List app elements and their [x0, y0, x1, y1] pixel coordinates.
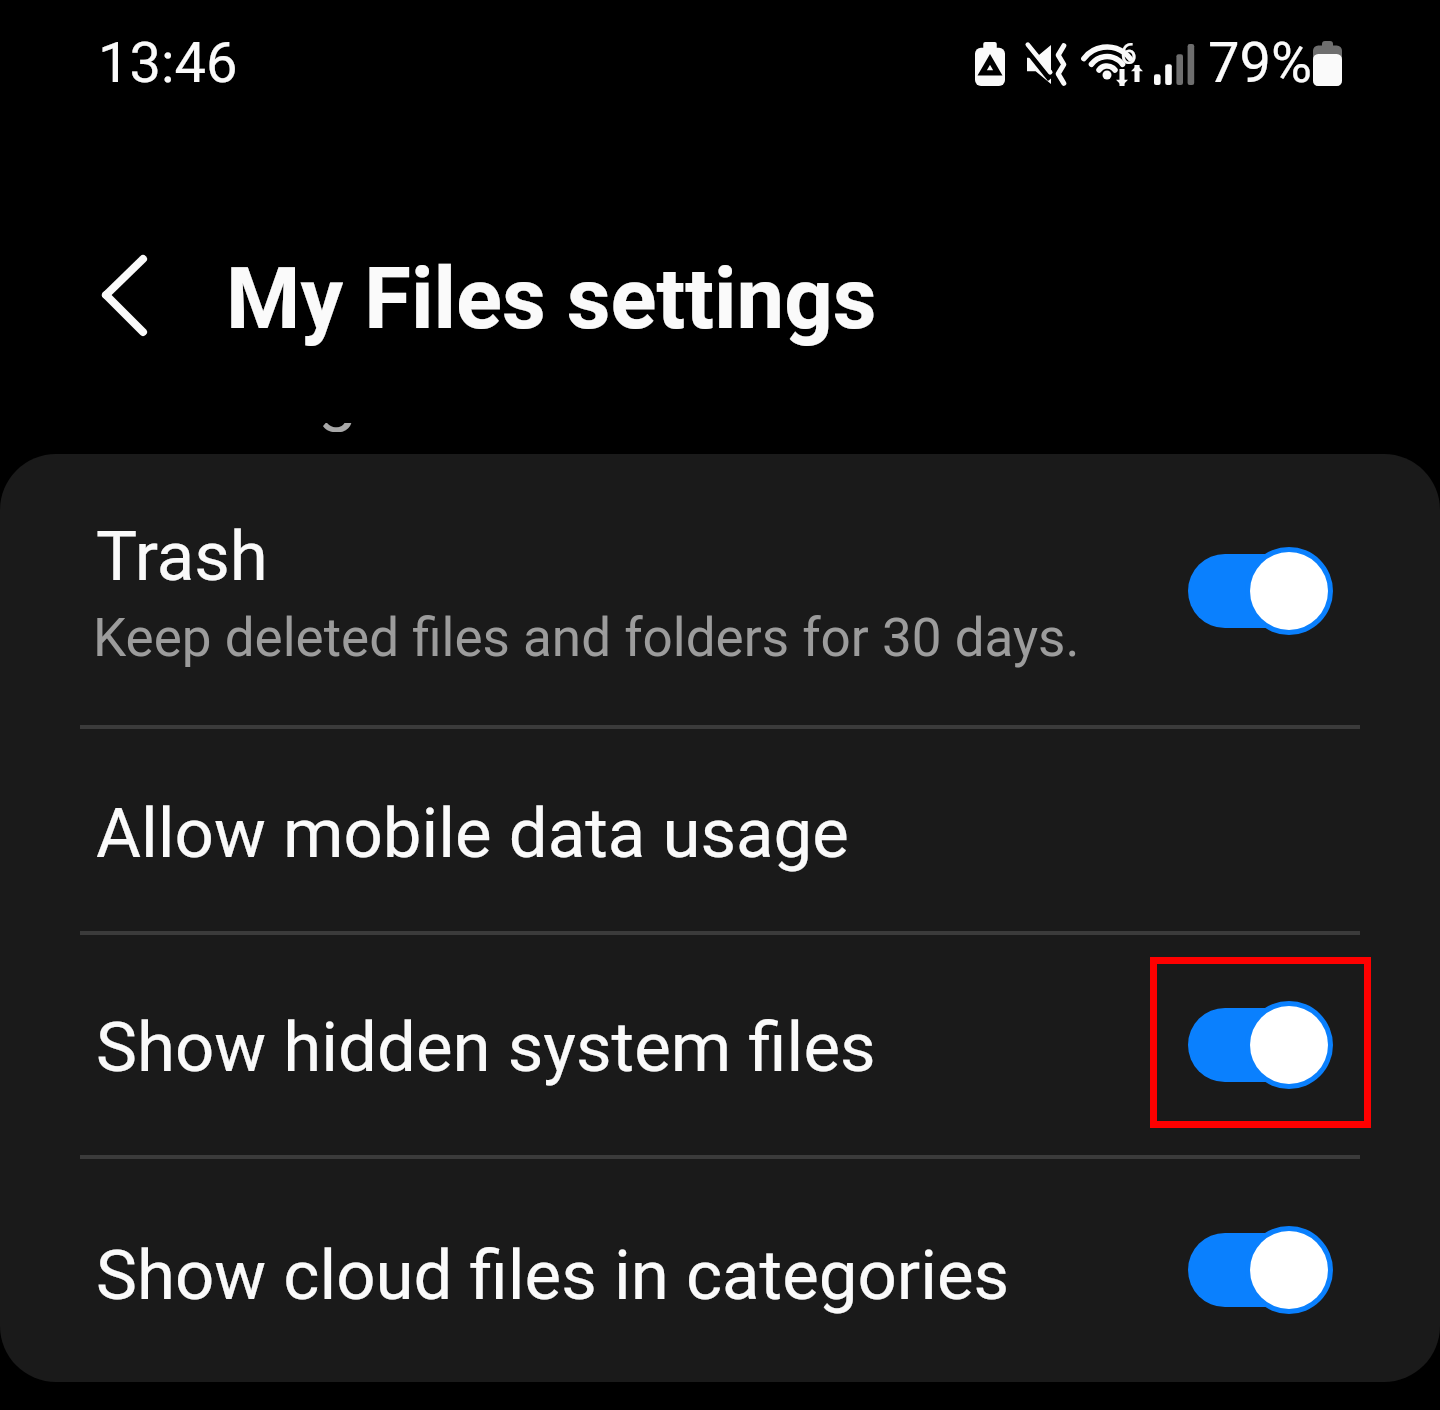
staticText: 79%: [1208, 30, 1312, 96]
staticText: g: [320, 423, 357, 432]
staticText: Trash: [96, 516, 268, 597]
staticText: 13:46: [98, 30, 238, 96]
button[interactable]: Show hidden system files: [0, 934, 1440, 1155]
button[interactable]: Navigate up: [56, 245, 156, 345]
staticText: Allow mobile data usage: [96, 793, 849, 874]
button[interactable]: Trash, on: [1188, 545, 1332, 637]
staticText: Keep deleted files and folders for 30 da…: [93, 607, 1080, 669]
staticText: My Files settings: [226, 249, 877, 349]
button[interactable]: Show cloud files in categories: [0, 1158, 1440, 1380]
staticText: 6: [1120, 36, 1137, 71]
button[interactable]: Show cloud files in categories, on: [1188, 1224, 1332, 1316]
staticText: Show hidden system files: [96, 1007, 876, 1088]
staticText: Show cloud files in categories: [96, 1235, 1010, 1316]
button[interactable]: Trash: [0, 454, 1440, 725]
button[interactable]: Show hidden system files, on: [1188, 999, 1332, 1091]
button[interactable]: Allow mobile data usage: [0, 728, 1440, 931]
